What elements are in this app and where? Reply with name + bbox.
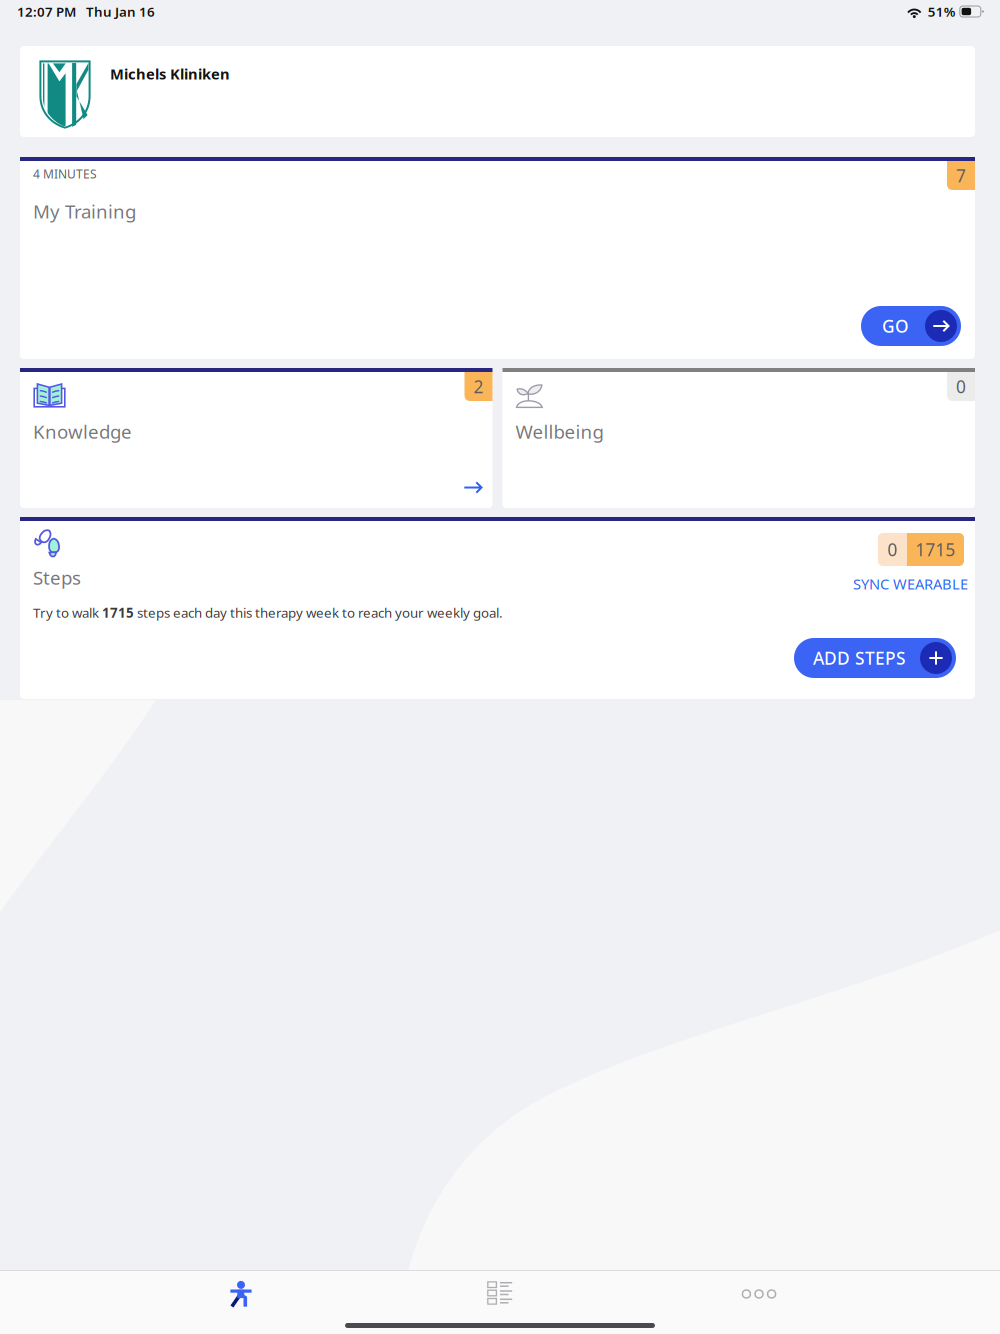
button[interactable]: Open Knowledge <box>458 473 487 502</box>
staticText: 7 <box>956 164 966 187</box>
staticText: Steps <box>33 565 81 590</box>
staticText: 12:07 PM <box>17 3 76 20</box>
staticText: 0 <box>887 538 897 561</box>
button[interactable]: Plan <box>414 1271 586 1317</box>
staticText: ADD STEPS <box>813 646 906 669</box>
staticText: GO <box>882 314 909 337</box>
staticText: Wellbeing <box>515 419 603 444</box>
staticText: Michels Kliniken <box>110 64 230 83</box>
staticText: 0 <box>956 375 966 398</box>
staticText: Thu Jan 16 <box>86 3 155 20</box>
button[interactable]: More <box>673 1271 845 1317</box>
staticText: Try to walk 1715 steps each day this the… <box>33 604 503 621</box>
button[interactable]: ADD STEPS <box>794 638 961 678</box>
staticText: SYNC WEARABLE <box>853 574 968 593</box>
button[interactable]: SYNC WEARABLE <box>853 566 975 593</box>
staticText: 51% <box>928 3 956 20</box>
staticText: 4 MINUTES <box>33 166 97 182</box>
button[interactable]: Exercises <box>155 1271 327 1317</box>
staticText: 1715 <box>915 538 955 561</box>
staticText: My Training <box>33 199 136 224</box>
button[interactable]: GO <box>861 306 961 346</box>
staticText: 2 <box>473 375 483 398</box>
staticText: Knowledge <box>33 419 132 444</box>
